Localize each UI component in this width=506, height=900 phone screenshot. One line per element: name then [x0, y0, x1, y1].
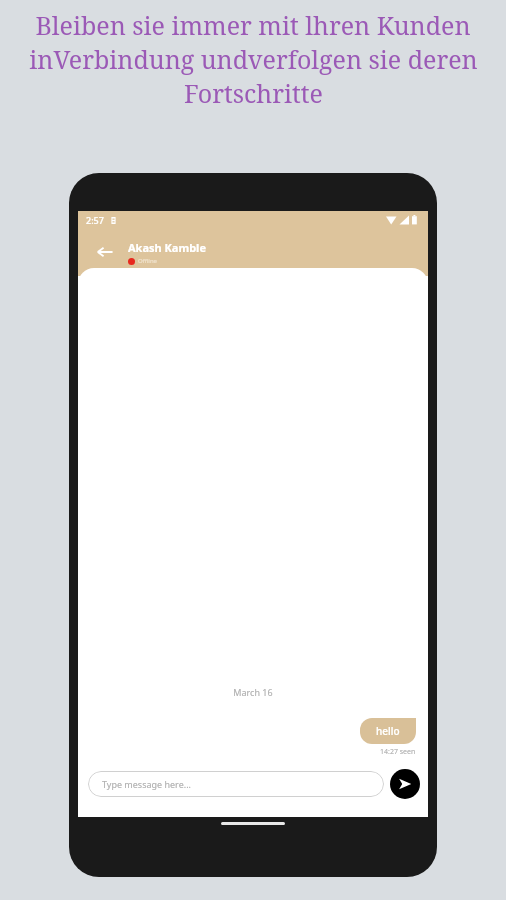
staticText: inVerbindung undverfolgen sie deren — [29, 42, 478, 76]
button[interactable]: Back — [88, 235, 122, 269]
staticText: Offline — [138, 257, 158, 265]
staticText: Akash Kamble — [128, 240, 206, 255]
staticText: Fortschritte — [184, 76, 323, 110]
button[interactable]: Send — [390, 769, 420, 799]
button[interactable]: Akash Kamble — [128, 240, 206, 265]
staticText: hello — [376, 724, 400, 738]
button[interactable]: Type message here... — [88, 771, 384, 797]
staticText: 2:57 — [86, 214, 104, 226]
staticText: March 16 — [78, 686, 428, 698]
staticText: Bleiben sie immer mit lhren Kunden — [35, 8, 471, 42]
staticText: 14:27 seen — [380, 747, 416, 757]
staticText: Type message here... — [102, 778, 191, 790]
button[interactable]: hello — [360, 718, 416, 744]
